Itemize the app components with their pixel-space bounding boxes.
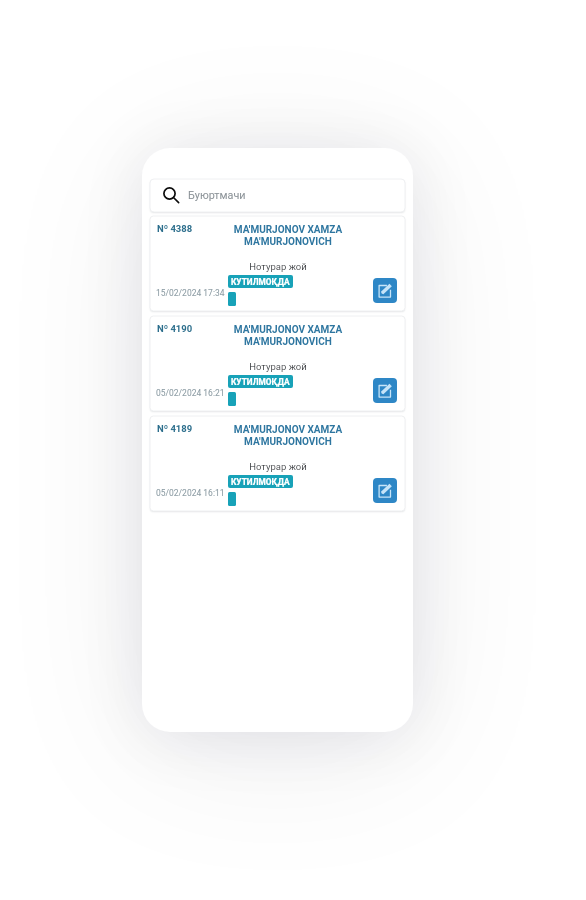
staticText: 05/02/2024 16:11 xyxy=(156,488,225,498)
staticText: Нотурар жой xyxy=(213,261,343,272)
button[interactable]: Edit order xyxy=(373,478,397,503)
staticText: MA'MURJONOV XAMZA MA'MURJONOVICH xyxy=(223,224,353,248)
button[interactable]: Буюртмачи xyxy=(150,179,405,212)
staticText: КУТИЛМОҚДА xyxy=(231,477,290,487)
staticText: КУТИЛМОҚДА xyxy=(231,377,290,387)
staticText: 15/02/2024 17:34 xyxy=(156,288,225,298)
staticText: Буюртмачи xyxy=(188,189,246,202)
button[interactable]: Edit order xyxy=(373,278,397,303)
staticText: Nº 4190 xyxy=(157,323,193,334)
staticText: Нотурар жой xyxy=(213,361,343,372)
button[interactable]: Nº 4189 xyxy=(150,416,405,511)
staticText: Нотурар жой xyxy=(213,461,343,472)
button[interactable]: Nº 4190 xyxy=(150,316,405,411)
staticText: КУТИЛМОҚДА xyxy=(231,277,290,287)
staticText: MA'MURJONOV XAMZA MA'MURJONOVICH xyxy=(223,324,353,348)
button[interactable]: Edit order xyxy=(373,378,397,403)
button[interactable]: Nº 4388 xyxy=(150,216,405,311)
staticText: MA'MURJONOV XAMZA MA'MURJONOVICH xyxy=(223,424,353,448)
staticText: Nº 4189 xyxy=(157,423,193,434)
staticText: 05/02/2024 16:21 xyxy=(156,388,225,398)
staticText: Nº 4388 xyxy=(157,223,193,234)
